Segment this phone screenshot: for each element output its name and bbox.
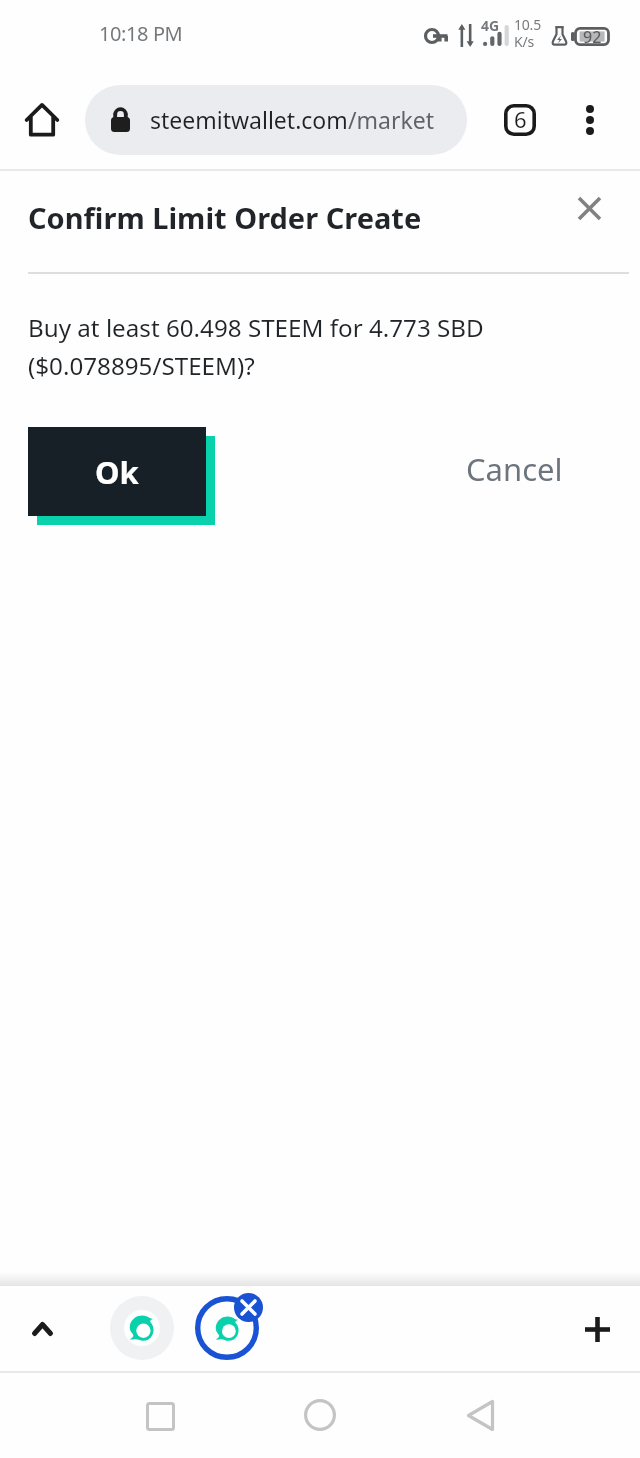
staticText: K/s (514, 32, 534, 51)
staticText: 4G (481, 16, 500, 35)
button[interactable]: Close (561, 180, 617, 236)
button[interactable]: Home (290, 1385, 350, 1445)
staticText: Cancel (466, 448, 563, 490)
staticText: Ok (95, 451, 139, 493)
button[interactable]: More options (560, 90, 620, 150)
button[interactable]: Expand toolbar (13, 1300, 71, 1358)
button[interactable]: Tabs (490, 90, 550, 150)
button[interactable]: Recent apps (130, 1386, 190, 1446)
staticText: Confirm Limit Order Create (28, 198, 422, 237)
staticText: 6 (514, 104, 527, 134)
button[interactable]: Tab steemitwallet (110, 1296, 174, 1360)
staticText: 10:18 PM (99, 20, 183, 47)
button[interactable]: Current tab (195, 1296, 259, 1360)
button[interactable]: Ok (28, 427, 206, 516)
staticText: steemitwallet.com (150, 104, 348, 135)
button[interactable]: Address bar (85, 85, 467, 155)
staticText: /market (348, 104, 435, 135)
button[interactable]: Cancel (455, 439, 573, 499)
button[interactable]: New tab (568, 1300, 626, 1358)
staticText: 92 (583, 26, 602, 45)
staticText: Buy at least 60.498 STEEM for 4.773 SBD … (28, 307, 498, 383)
staticText: 10.5 (514, 15, 541, 34)
button[interactable]: Home (12, 90, 72, 150)
button[interactable]: Close tab (234, 1293, 263, 1322)
button[interactable]: Back (450, 1385, 510, 1445)
